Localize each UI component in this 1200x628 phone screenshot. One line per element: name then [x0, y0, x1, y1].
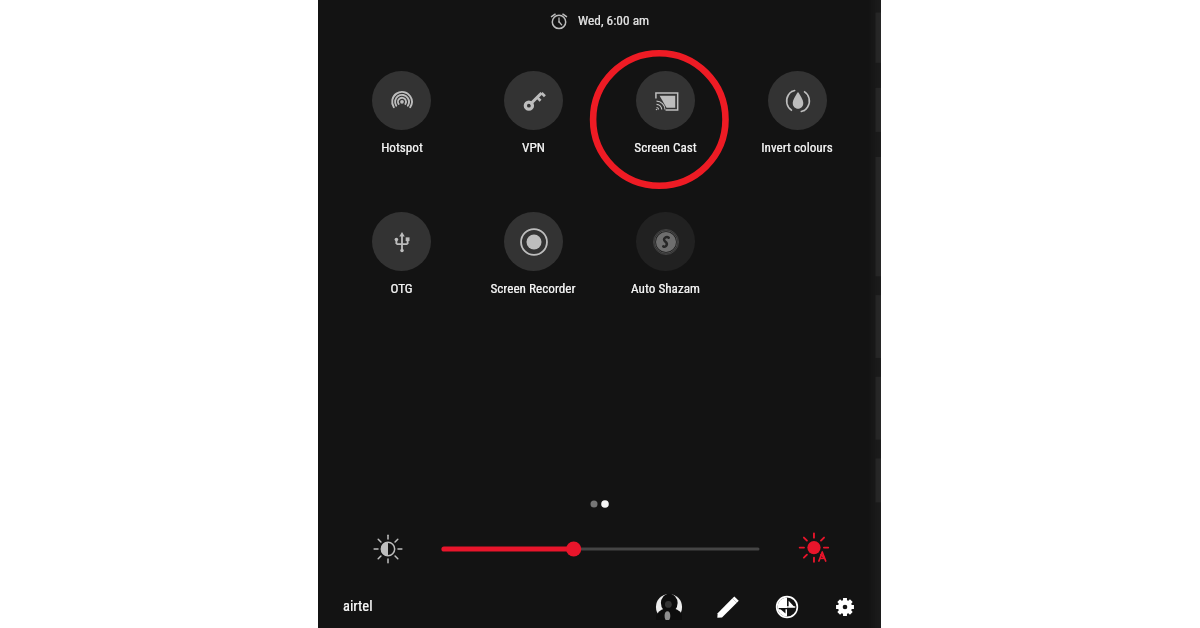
button[interactable]: Screen Cast	[599, 71, 731, 155]
button[interactable]: Auto brightness	[797, 531, 835, 569]
button[interactable]: Brightness slider	[436, 537, 766, 561]
button[interactable]: Auto Shazam	[599, 212, 731, 296]
button[interactable]: Edit tiles	[713, 592, 743, 622]
staticText: Hotspot	[381, 140, 423, 155]
staticText: Screen Recorder	[490, 281, 576, 296]
button[interactable]: Brightness	[370, 531, 406, 567]
staticText: airtel	[343, 598, 373, 615]
staticText: Wed, 6:00 am	[578, 13, 650, 29]
button[interactable]: OTG	[336, 212, 467, 296]
staticText: Invert colours	[761, 140, 833, 155]
button[interactable]: Screen Recorder	[467, 212, 599, 296]
button[interactable]: Invert colours	[731, 71, 863, 155]
staticText: OTG	[390, 281, 413, 296]
staticText: Screen Cast	[634, 140, 697, 155]
staticText: Auto Shazam	[631, 281, 700, 296]
staticText: VPN	[522, 140, 545, 155]
button[interactable]: User profile	[654, 592, 684, 622]
button[interactable]: Hotspot	[336, 71, 467, 155]
button[interactable]: Settings	[830, 592, 860, 622]
button[interactable]: Power	[772, 592, 802, 622]
button[interactable]: VPN	[467, 71, 599, 155]
